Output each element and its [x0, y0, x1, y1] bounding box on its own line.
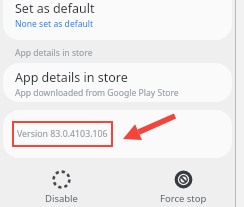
staticText: App downloaded from Google Play Store: [15, 87, 179, 99]
staticText: None set as default: [15, 18, 94, 30]
staticText: Force stop: [160, 192, 207, 205]
staticText: Version 83.0.4103.106: [17, 128, 108, 140]
button[interactable]: Disable: [0, 167, 122, 207]
button[interactable]: Set as default: [3, 0, 232, 40]
button[interactable]: Force stop: [122, 167, 244, 207]
other: Force stop: [174, 170, 193, 189]
other: Disable: [52, 170, 71, 189]
staticText: Disable: [45, 192, 78, 205]
button[interactable]: Version 83.0.4103.106: [3, 110, 232, 158]
staticText: App details in store: [15, 69, 128, 86]
button[interactable]: App details in store: [3, 63, 232, 102]
staticText: App details in store: [15, 47, 93, 59]
staticText: Set as default: [15, 0, 95, 17]
